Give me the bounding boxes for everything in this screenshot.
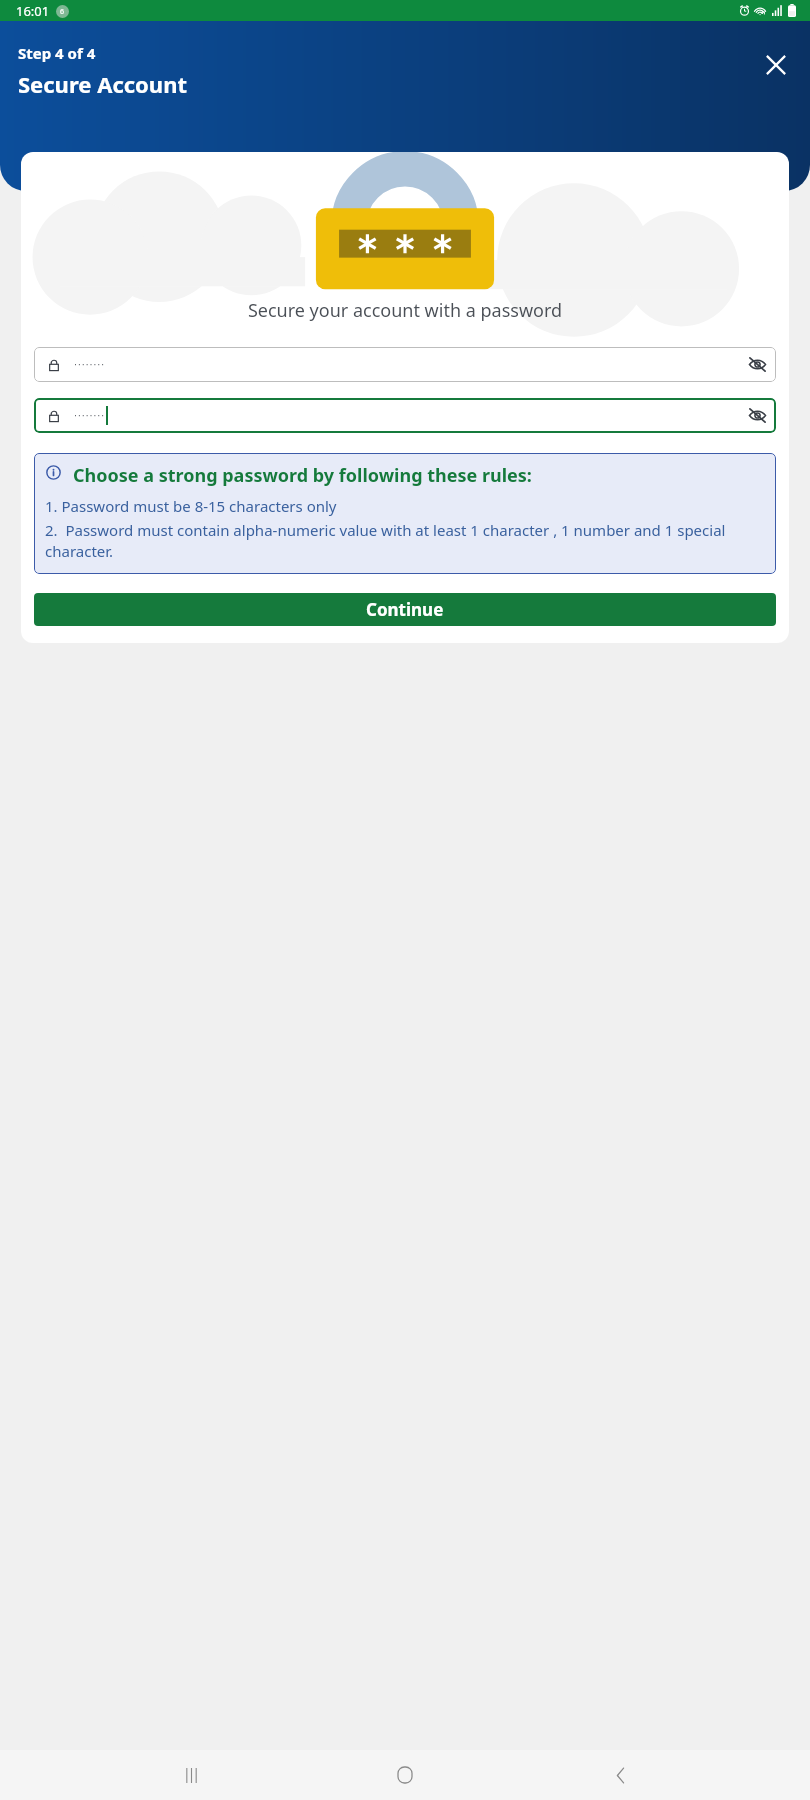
button[interactable]: Close — [754, 43, 798, 87]
staticText: Choose a strong password by following th… — [73, 463, 532, 488]
button[interactable]: Continue — [34, 593, 776, 626]
staticText: 6 — [60, 7, 65, 17]
staticText: 1. Password must be 8-15 characters only — [45, 496, 337, 516]
button[interactable]: Show password — [34, 347, 776, 382]
button[interactable]: Recents — [167, 1751, 215, 1799]
staticText: Secure your account with a password — [21, 298, 789, 323]
staticText: 2. Password must contain alpha-numeric v… — [45, 520, 765, 562]
staticText: Step 4 of 4 — [18, 43, 96, 63]
staticText: Continue — [366, 598, 444, 621]
button[interactable]: Back — [596, 1751, 644, 1799]
button[interactable]: Show password — [738, 347, 776, 382]
button[interactable]: Show password — [34, 398, 776, 433]
button[interactable]: Home — [381, 1751, 429, 1799]
staticText: 16:01 — [16, 2, 50, 20]
staticText: Secure Account — [18, 69, 187, 99]
button[interactable]: Show password — [738, 398, 776, 433]
